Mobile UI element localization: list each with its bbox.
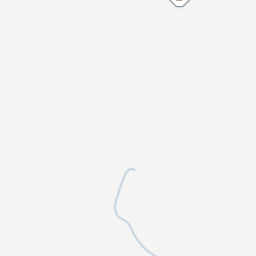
button[interactable]: Map pin <box>0 0 256 256</box>
